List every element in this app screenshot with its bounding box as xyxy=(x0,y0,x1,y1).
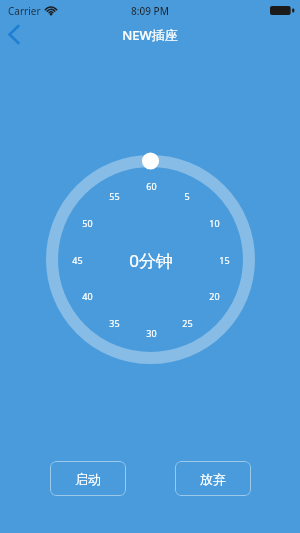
staticText: 40 xyxy=(82,290,93,302)
staticText: 45 xyxy=(72,254,83,266)
staticText: 放弃 xyxy=(200,471,226,487)
staticText: 10 xyxy=(209,217,220,229)
staticText: 20 xyxy=(209,290,220,302)
staticText: 60 xyxy=(146,180,157,192)
button[interactable]: Back xyxy=(0,20,42,50)
button[interactable]: 放弃 xyxy=(175,461,251,496)
button[interactable]: Timer dial xyxy=(45,154,256,365)
staticText: 0分钟 xyxy=(129,249,173,272)
staticText: 8:09 PM xyxy=(131,4,169,18)
staticText: 25 xyxy=(182,317,193,329)
button[interactable]: 启动 xyxy=(50,461,126,496)
staticText: Carrier xyxy=(8,4,41,18)
staticText: 5 xyxy=(184,190,190,202)
staticText: 50 xyxy=(82,217,93,229)
staticText: NEW插座 xyxy=(122,26,178,44)
staticText: 30 xyxy=(146,327,157,339)
staticText: 35 xyxy=(109,317,120,329)
staticText: 启动 xyxy=(75,471,101,487)
staticText: 55 xyxy=(109,190,120,202)
staticText: 15 xyxy=(219,254,230,266)
